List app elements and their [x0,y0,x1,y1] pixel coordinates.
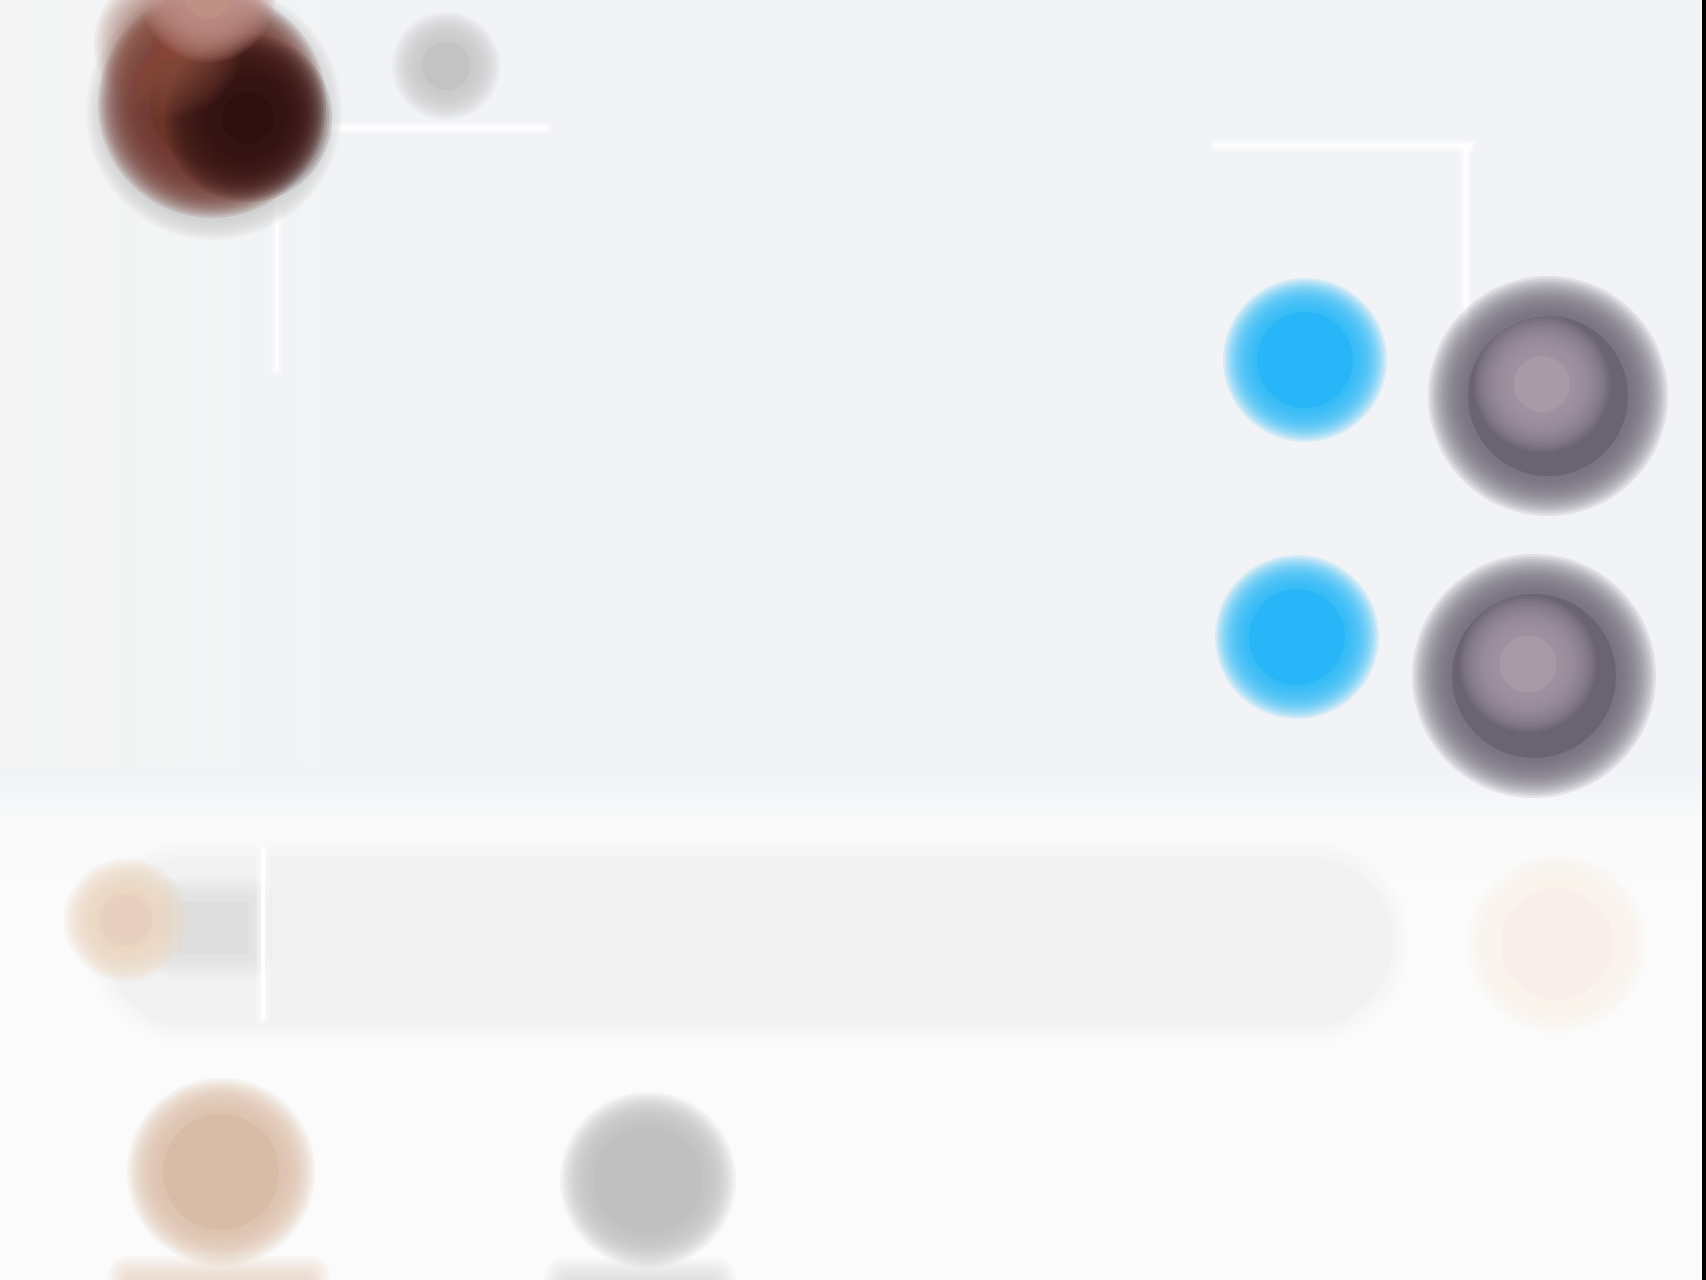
button[interactable] [0,0,1706,1280]
button[interactable]: Send [0,0,1706,1280]
button[interactable]: Contacts [0,0,1706,1280]
button[interactable]: Chats [0,0,1706,1280]
